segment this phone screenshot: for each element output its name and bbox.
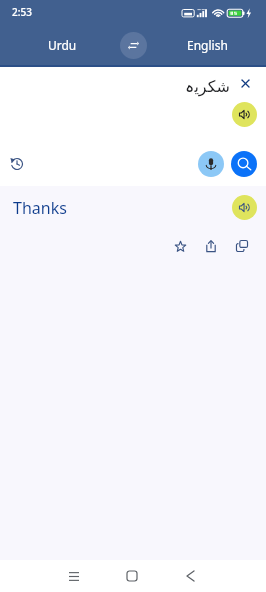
button[interactable]: Listen to source (232, 102, 257, 127)
button[interactable]: Urdu (5, 24, 119, 65)
staticText: English (187, 37, 228, 53)
button[interactable]: Voice input (198, 151, 224, 177)
button[interactable]: Recent apps (52, 560, 96, 592)
button[interactable]: Back (168, 560, 212, 592)
button[interactable]: Save to favorites (167, 233, 193, 259)
button[interactable]: Search (231, 151, 257, 177)
staticText: Thanks (13, 197, 67, 219)
button[interactable]: Swap languages (120, 32, 147, 59)
button[interactable]: English (151, 24, 264, 65)
button[interactable]: Clear text (234, 72, 256, 94)
staticText: شکریہ (185, 77, 230, 96)
button[interactable]: Share (198, 233, 224, 259)
staticText: Urdu (48, 37, 77, 53)
staticText: 2:53 (12, 5, 32, 19)
button[interactable]: Copy (229, 233, 255, 259)
button[interactable]: History (3, 150, 29, 176)
button[interactable]: Home (110, 560, 154, 592)
button[interactable]: Listen to translation (232, 195, 257, 220)
